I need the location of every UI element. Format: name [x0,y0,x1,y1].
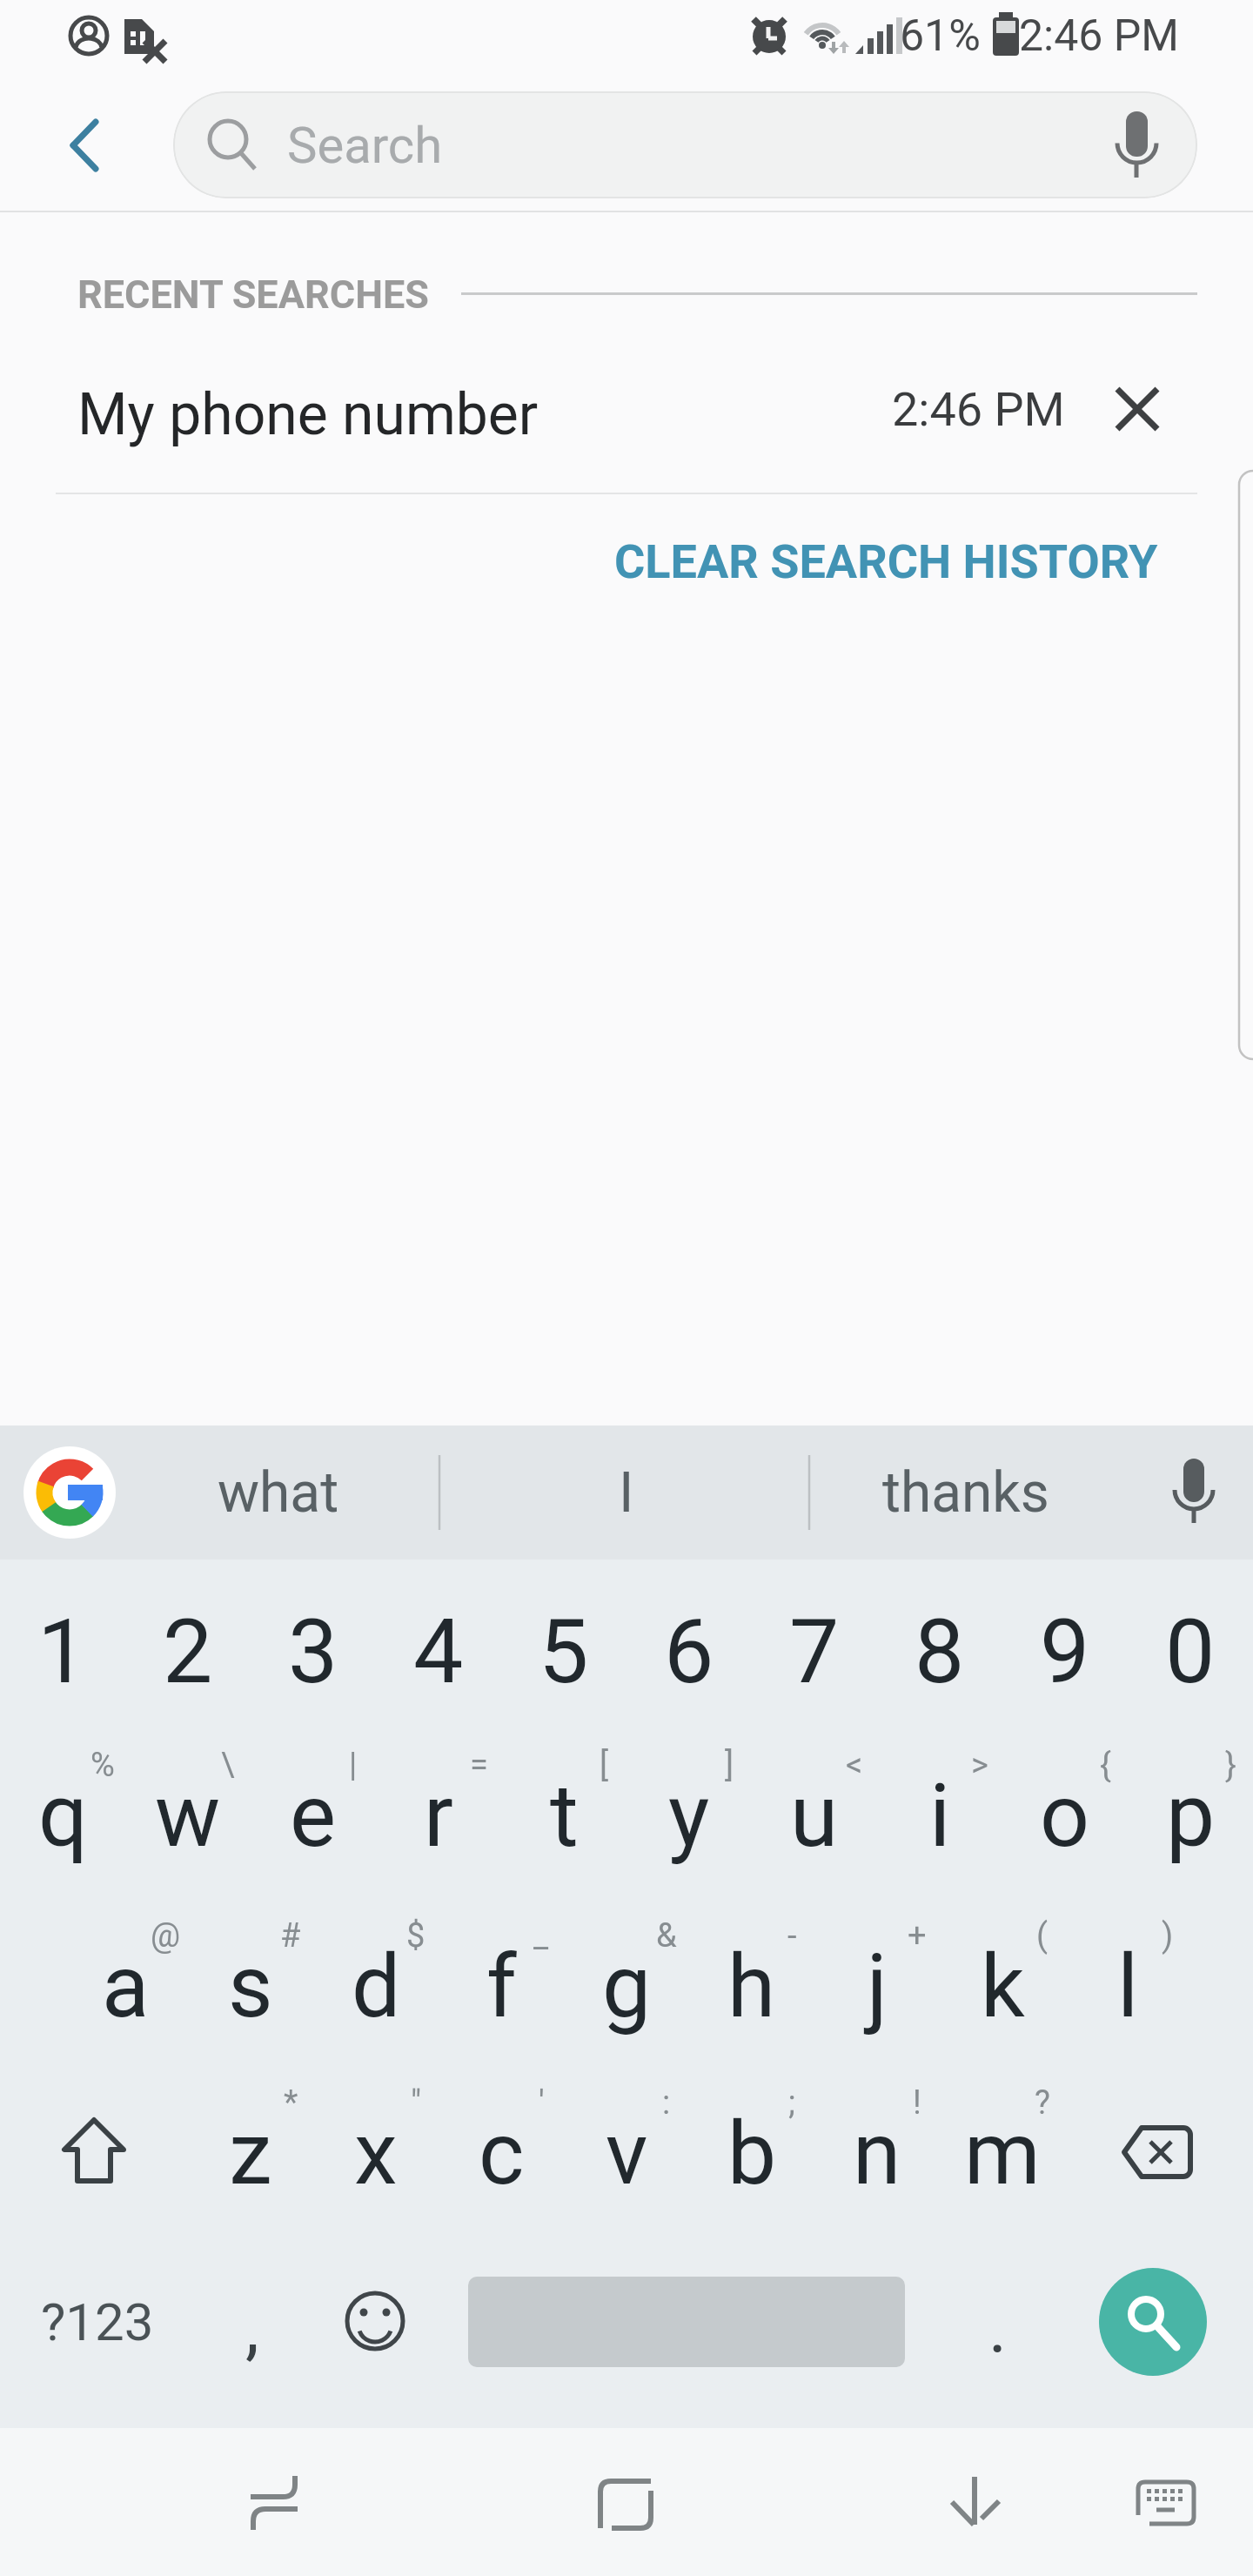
button[interactable]: o [1002,1739,1128,1892]
button[interactable] [35,355,1079,463]
staticText: . [988,2288,1008,2370]
staticText: ? [1035,2083,1050,2123]
button[interactable] [1140,1440,1248,1545]
button[interactable]: k [940,1909,1065,2063]
button[interactable] [213,2437,335,2567]
staticText: | [349,1746,358,1785]
button[interactable]: . [935,2252,1061,2405]
staticText: CLEAR SEARCH HISTORY [614,534,1158,589]
button[interactable] [35,104,122,191]
staticText: f [486,1935,517,2037]
button[interactable]: u [752,1739,877,1892]
button[interactable]: 9 [1002,1565,1128,1739]
staticText: s [228,1935,273,2037]
button[interactable] [1099,2268,1207,2376]
button[interactable]: ?123 [35,2245,160,2398]
button[interactable]: f [439,1909,564,2063]
button[interactable]: 5 [501,1565,626,1739]
button[interactable] [312,2258,438,2384]
staticText: n [853,2103,901,2204]
button[interactable] [1122,2437,1218,2567]
button[interactable] [1096,367,1179,451]
button[interactable]: t [501,1739,626,1892]
button[interactable]: 0 [1128,1565,1253,1739]
staticText: < [846,1746,863,1785]
staticText: p [1166,1765,1216,1867]
staticText: c [479,2103,525,2204]
button[interactable]: m [940,2076,1065,2230]
button[interactable]: b [689,2076,814,2230]
staticText: @ [151,1916,181,1955]
button[interactable]: 7 [752,1565,877,1739]
staticText: = [470,1746,488,1785]
button[interactable]: , [190,2252,315,2405]
button[interactable]: CLEAR SEARCH HISTORY [601,531,1158,592]
staticText: 3 [288,1600,338,1704]
button[interactable] [23,1446,116,1539]
button[interactable]: 2 [125,1565,251,1739]
staticText: 0 [1165,1600,1216,1704]
staticText: , [245,2288,259,2370]
button[interactable]: s [188,1909,313,2063]
staticText: u [790,1765,839,1867]
staticText: $ [406,1916,425,1955]
button[interactable] [31,2076,157,2230]
button[interactable]: c [439,2076,564,2230]
staticText: - [787,1916,797,1955]
staticText: 5 [539,1600,589,1704]
button[interactable]: e [251,1739,376,1892]
staticText: % [90,1746,115,1785]
button[interactable]: y [626,1739,752,1892]
staticText: 2:46 PM [892,382,1065,437]
button[interactable]: r [376,1739,501,1892]
staticText: h [727,1935,776,2037]
button[interactable] [1088,96,1185,193]
button[interactable]: z [188,2076,313,2230]
staticText: 2:46 PM [1019,10,1180,62]
staticText: { [1100,1746,1111,1785]
staticText: i [929,1765,951,1867]
staticText: ?123 [41,2291,154,2352]
staticText: thanks [882,1460,1049,1526]
staticText: ( [1036,1916,1049,1955]
button[interactable]: n [814,2076,940,2230]
button[interactable]: 6 [626,1565,752,1739]
staticText: " [411,2083,422,2123]
button[interactable]: 4 [376,1565,501,1739]
button[interactable]: l [1065,1909,1190,2063]
button[interactable] [914,2437,1035,2567]
staticText: 6 [664,1600,714,1704]
button[interactable]: q [0,1739,125,1892]
button[interactable]: g [564,1909,689,2063]
button[interactable]: i [877,1739,1002,1892]
button[interactable]: 3 [251,1565,376,1739]
button[interactable]: 8 [877,1565,1002,1739]
staticText: v [606,2103,648,2204]
staticText: \ [221,1746,235,1785]
staticText: + [908,1916,927,1955]
staticText: d [352,1935,401,2037]
button[interactable]: thanks [853,1440,1079,1545]
button[interactable]: w [125,1739,251,1892]
button[interactable]: x [313,2076,439,2230]
staticText: r [424,1765,453,1867]
button[interactable]: v [564,2076,689,2230]
staticText: ] [725,1746,734,1785]
button[interactable]: a [63,1909,188,2063]
button[interactable] [565,2437,687,2567]
button[interactable]: I [513,1440,740,1545]
staticText: k [981,1935,1025,2037]
staticText: 61% [900,10,981,62]
button[interactable]: d [313,1909,439,2063]
button[interactable]: j [814,1909,940,2063]
button[interactable]: h [689,1909,814,2063]
staticText: ) [1162,1916,1174,1955]
button[interactable] [1096,2076,1222,2230]
button[interactable]: what [165,1440,392,1545]
button[interactable]: 1 [0,1565,125,1739]
button[interactable] [173,91,1197,198]
button[interactable]: p [1128,1739,1253,1892]
staticText: y [668,1765,710,1867]
staticText: o [1040,1765,1090,1867]
